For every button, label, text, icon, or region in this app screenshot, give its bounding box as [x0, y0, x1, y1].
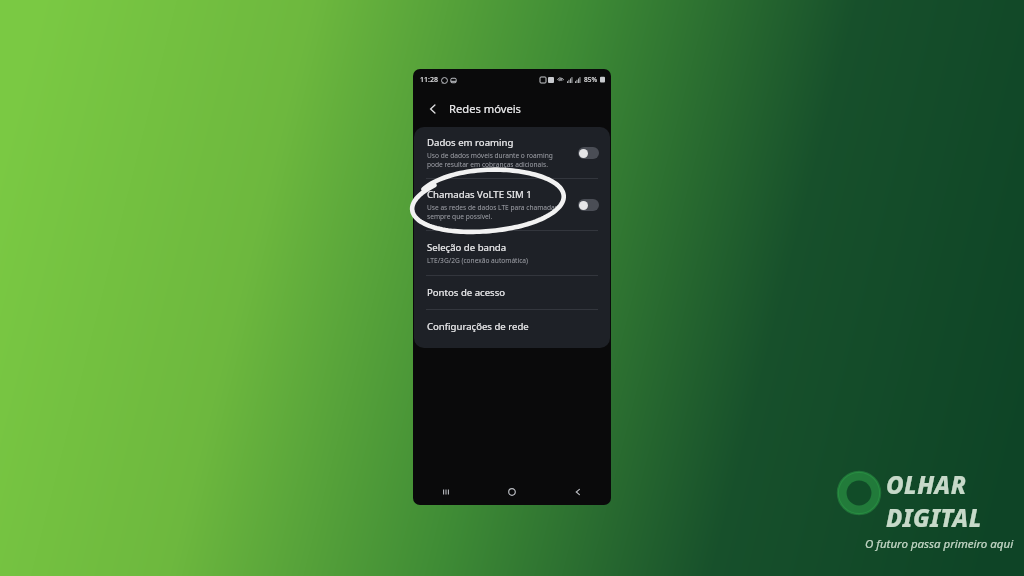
button[interactable]: Alternar — [578, 147, 599, 159]
button[interactable]: Voltar — [423, 99, 443, 119]
button[interactable]: Configurações de rede — [414, 310, 610, 343]
button[interactable]: Pontos de acesso — [414, 276, 610, 309]
staticText: Redes móveis — [449, 101, 521, 116]
staticText: Uso de dados móveis durante o roaming po… — [427, 151, 553, 169]
button[interactable]: Seleção de banda — [414, 231, 610, 275]
button[interactable]: Início — [479, 479, 545, 505]
button[interactable]: Alternar — [578, 199, 599, 211]
staticText: Configurações de rede — [427, 320, 529, 333]
staticText: Chamadas VoLTE SIM 1 — [427, 188, 532, 201]
staticText: Dados em roaming — [427, 136, 514, 149]
button[interactable]: Dados em roaming — [414, 127, 610, 178]
staticText: 85% — [584, 75, 598, 84]
staticText: Use as redes de dados LTE para chamadas … — [427, 203, 558, 221]
staticText: LTE/3G/2G (conexão automática) — [427, 256, 529, 265]
staticText: Pontos de acesso — [427, 286, 506, 299]
staticText: O futuro passa primeiro aqui — [865, 536, 1014, 552]
button[interactable]: Voltar — [545, 479, 611, 505]
staticText: DIGITAL — [886, 501, 982, 534]
staticText: 11:28 — [420, 75, 438, 85]
button[interactable]: Recentes — [413, 479, 479, 505]
button[interactable]: Chamadas VoLTE SIM 1 — [414, 179, 610, 230]
staticText: Seleção de banda — [427, 241, 507, 254]
staticText: OLHAR — [886, 468, 967, 501]
